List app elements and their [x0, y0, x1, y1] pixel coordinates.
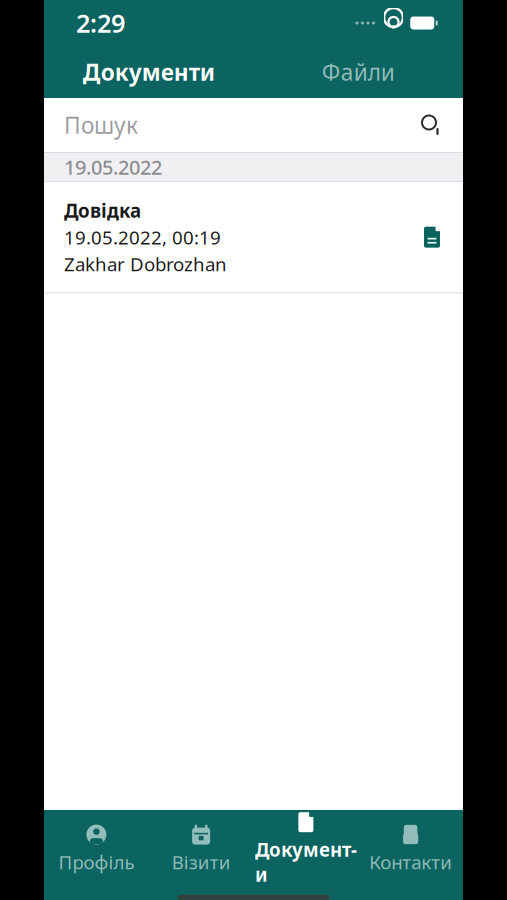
- staticText: Довідка: [64, 198, 141, 223]
- button[interactable]: Документи: [44, 50, 253, 94]
- staticText: Профіль: [58, 850, 134, 874]
- staticText: Zakhar Dobrozhan: [64, 252, 227, 276]
- button[interactable]: Профіль: [44, 814, 149, 874]
- button[interactable]: Документи: [253, 801, 358, 887]
- button[interactable]: Пошук: [44, 98, 463, 152]
- staticText: 19.05.2022, 00:19: [64, 225, 221, 250]
- staticText: Контакти: [369, 850, 452, 874]
- button[interactable]: Візити: [149, 814, 254, 874]
- staticText: Візити: [172, 850, 231, 874]
- staticText: Файли: [322, 57, 395, 87]
- staticText: 2:29: [76, 6, 125, 40]
- button[interactable]: Контакти: [358, 814, 463, 874]
- button[interactable]: Довідка: [44, 182, 463, 292]
- button[interactable]: Файли: [253, 50, 463, 94]
- staticText: Документи: [83, 57, 215, 87]
- staticText: Пошук: [64, 110, 138, 140]
- staticText: Документи: [255, 837, 357, 887]
- staticText: 19.05.2022: [64, 154, 162, 180]
